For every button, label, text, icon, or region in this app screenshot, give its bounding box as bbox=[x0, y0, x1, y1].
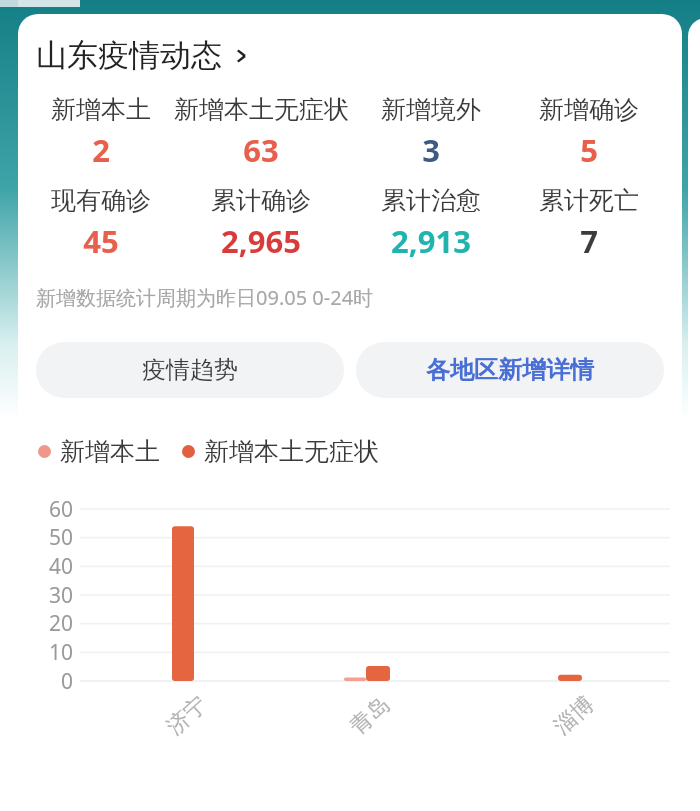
staticText: 新增境外 bbox=[381, 94, 481, 125]
button[interactable]: 现有确诊 bbox=[32, 185, 169, 262]
staticText: 2 bbox=[92, 129, 110, 171]
staticText: 5 bbox=[580, 129, 598, 171]
staticText: 现有确诊 bbox=[51, 185, 151, 216]
button[interactable]: 新增本土 bbox=[32, 94, 169, 171]
other: Open details bbox=[231, 46, 251, 66]
staticText: 新增本土无症状 bbox=[204, 436, 379, 467]
button[interactable]: 山东疫情动态 bbox=[18, 14, 682, 811]
button[interactable]: 新增确诊 bbox=[509, 94, 668, 171]
staticText: 3 bbox=[422, 129, 440, 171]
button[interactable]: 山东疫情动态 bbox=[36, 36, 682, 75]
button[interactable]: 新增本土 bbox=[38, 436, 160, 467]
staticText: 累计确诊 bbox=[211, 185, 311, 216]
staticText: 7 bbox=[580, 220, 598, 262]
staticText: 山东疫情动态 bbox=[36, 36, 222, 75]
button[interactable]: 疫情趋势 bbox=[36, 342, 344, 398]
button[interactable]: 新增境外 bbox=[353, 94, 509, 171]
button[interactable]: 累计确诊 bbox=[169, 185, 353, 262]
staticText: 各地区新增详情 bbox=[426, 355, 594, 385]
staticText: 45 bbox=[83, 220, 119, 262]
staticText: 疫情趋势 bbox=[142, 355, 238, 385]
staticText: 累计治愈 bbox=[381, 185, 481, 216]
staticText: 累计死亡 bbox=[539, 185, 639, 216]
staticText: 新增确诊 bbox=[539, 94, 639, 125]
staticText: 新增本土 bbox=[51, 94, 151, 125]
staticText: 63 bbox=[243, 129, 279, 171]
button[interactable]: 新增本土无症状 bbox=[182, 436, 379, 467]
staticText: 新增本土无症状 bbox=[174, 94, 349, 125]
staticText: 2,965 bbox=[221, 220, 301, 262]
staticText: 新增本土 bbox=[60, 436, 160, 467]
button[interactable]: 各地区新增详情 bbox=[356, 342, 664, 398]
button[interactable]: 新增本土无症状 bbox=[169, 94, 353, 171]
button[interactable]: 累计治愈 bbox=[353, 185, 509, 262]
staticText: 新增数据统计周期为昨日09.05 0-24时 bbox=[36, 284, 374, 311]
button[interactable]: 累计死亡 bbox=[509, 185, 668, 262]
staticText: 2,913 bbox=[391, 220, 471, 262]
